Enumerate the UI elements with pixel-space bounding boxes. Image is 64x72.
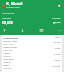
staticText: Available: [52, 17, 61, 20]
staticText: -$9.30: [54, 59, 61, 62]
button[interactable]: See all: [55, 36, 61, 39]
button[interactable]: Available: [52, 17, 61, 23]
staticText: Total balance: [2, 12, 15, 15]
staticText: Welcome back: [6, 6, 20, 9]
staticText: $8,420: [2, 20, 13, 25]
staticText: -$24.00: [53, 41, 61, 44]
staticText: Yesterday: [3, 61, 12, 63]
button[interactable]: Send: [2, 28, 7, 33]
staticText: Today 09:15: [3, 49, 14, 51]
staticText: Yesterday: [3, 55, 12, 57]
staticText: Grocery Store: [3, 40, 18, 43]
button[interactable]: Cards: [39, 28, 44, 33]
staticText: +$2,400: [52, 65, 61, 68]
staticText: Coffee House: [3, 46, 17, 49]
staticText: Today 12:30: [3, 43, 14, 45]
staticText: Uber Ride: [3, 58, 14, 61]
button[interactable]: Coffee House: [3, 46, 61, 51]
staticText: Netflix: [3, 52, 10, 55]
staticText: Salary: [3, 64, 10, 67]
button[interactable]: Profile: [2, 4, 5, 7]
button[interactable]: More: [57, 28, 62, 33]
button[interactable]: Salary: [3, 64, 61, 69]
staticText: Mon 02:00: [3, 67, 12, 69]
button[interactable]: Uber Ride: [3, 58, 61, 63]
staticText: -$4.50: [54, 47, 61, 50]
button[interactable]: Receive: [20, 28, 25, 33]
button[interactable]: Netflix: [3, 52, 61, 57]
button[interactable]: Notifications: [58, 4, 61, 7]
staticText: $3,150: [53, 20, 61, 23]
staticText: -$12.99: [53, 53, 61, 56]
staticText: Hi, Mitchell: [6, 2, 23, 6]
staticText: Spending: [2, 17, 11, 20]
button[interactable]: Grocery Store: [3, 40, 61, 45]
staticText: Transactions: [3, 36, 19, 39]
